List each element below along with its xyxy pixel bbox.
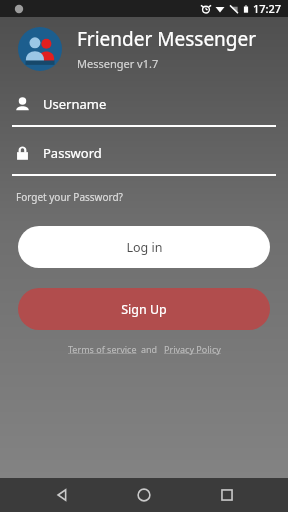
staticText: Password: [43, 144, 102, 162]
button[interactable]: Sign Up: [18, 288, 270, 330]
button[interactable]: Recent apps: [206, 478, 248, 512]
staticText: Log in: [126, 239, 163, 256]
staticText: Messenger v1.7: [77, 56, 159, 71]
staticText: Username: [43, 95, 107, 113]
staticText: Privacy Policy: [164, 343, 221, 355]
staticText: 17:27: [253, 1, 282, 16]
button[interactable]: Back: [41, 478, 83, 512]
button[interactable]: Username: [0, 95, 288, 127]
button[interactable]: Privacy Policy: [164, 343, 221, 355]
button[interactable]: Password: [0, 144, 288, 176]
button[interactable]: Terms of service: [68, 343, 137, 355]
staticText: Friender Messenger: [77, 26, 257, 52]
button[interactable]: Home: [123, 478, 165, 512]
staticText: and: [141, 343, 158, 355]
staticText: Terms of service: [68, 343, 137, 355]
staticText: Sign Up: [121, 301, 167, 318]
button[interactable]: Forget your Password?: [14, 188, 125, 206]
staticText: Forget your Password?: [16, 190, 123, 204]
button[interactable]: Log in: [18, 226, 270, 268]
